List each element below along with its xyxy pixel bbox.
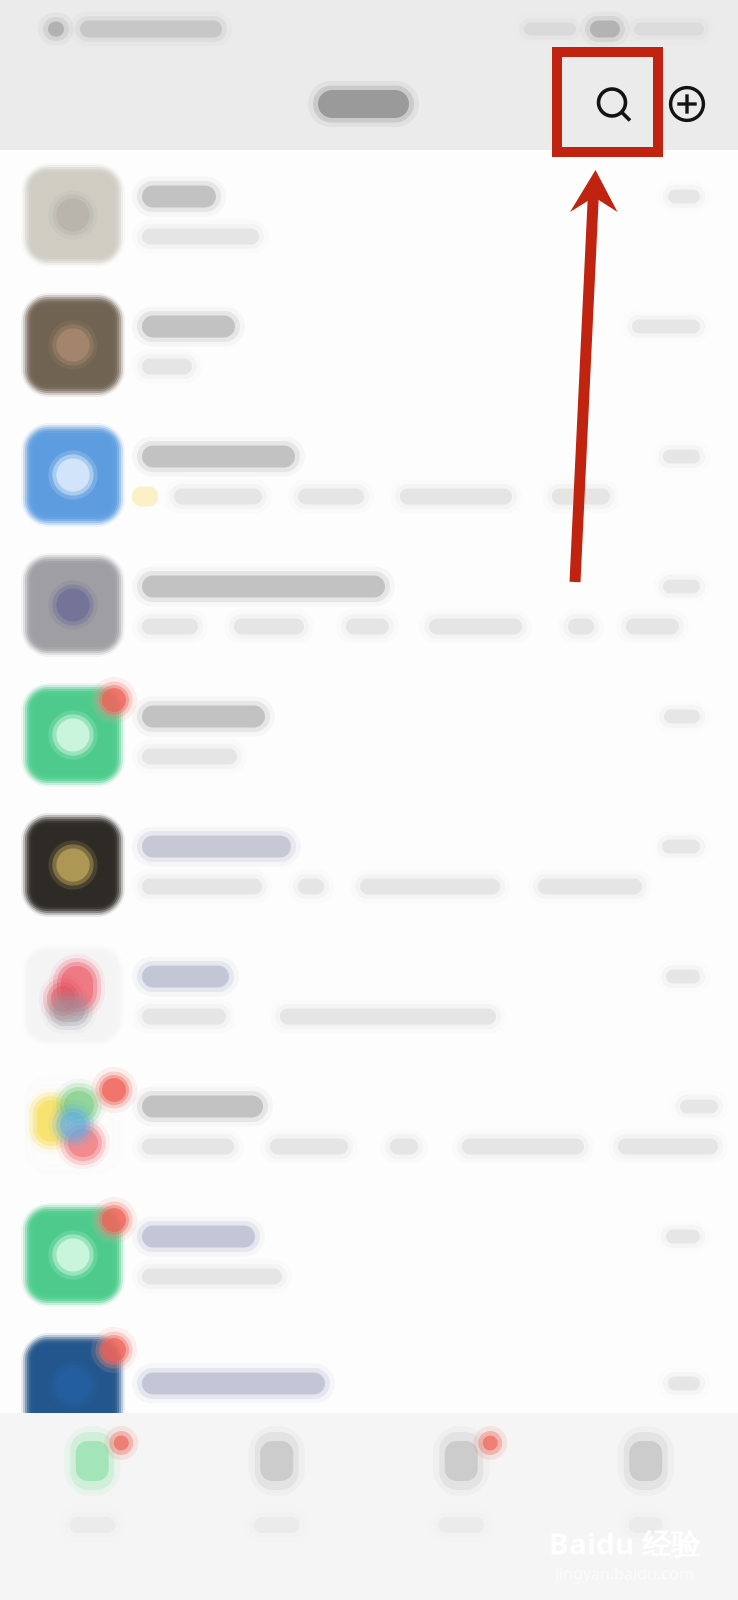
button[interactable] xyxy=(0,1190,738,1320)
button[interactable]: Me xyxy=(553,1413,738,1600)
button[interactable] xyxy=(0,280,738,410)
button[interactable]: Chats xyxy=(0,1413,184,1600)
button[interactable]: New chat xyxy=(656,58,718,150)
button[interactable]: Contacts xyxy=(184,1413,369,1600)
button[interactable] xyxy=(0,410,738,540)
staticText: Baidu 经验 xyxy=(549,1524,700,1563)
button[interactable] xyxy=(0,800,738,930)
button[interactable]: Discover xyxy=(369,1413,553,1600)
button[interactable] xyxy=(0,930,738,1060)
button[interactable] xyxy=(0,540,738,670)
button[interactable] xyxy=(0,150,738,280)
button[interactable]: Search xyxy=(571,58,656,150)
button[interactable] xyxy=(0,1060,738,1190)
button[interactable] xyxy=(0,670,738,800)
button[interactable] xyxy=(0,1320,738,1450)
